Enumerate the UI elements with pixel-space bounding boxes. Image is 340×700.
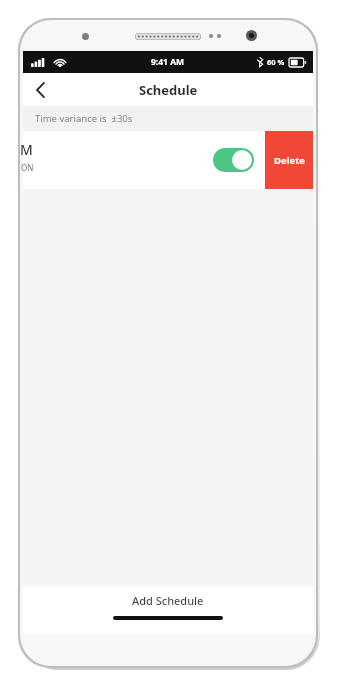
button[interactable]: Delete bbox=[265, 131, 313, 189]
button[interactable]: Schedule enabled bbox=[213, 148, 254, 172]
staticText: ON bbox=[21, 162, 34, 173]
button[interactable]: M bbox=[23, 131, 313, 189]
button[interactable]: Add Schedule bbox=[23, 586, 313, 614]
staticText: Time variance is ±30s bbox=[35, 112, 133, 125]
staticText: M bbox=[20, 140, 33, 159]
staticText: Delete bbox=[274, 154, 305, 167]
staticText: 60 % bbox=[267, 57, 285, 67]
staticText: Schedule bbox=[139, 81, 198, 99]
staticText: Add Schedule bbox=[132, 593, 204, 608]
staticText: 9:41 AM bbox=[151, 56, 185, 68]
button[interactable]: Back bbox=[23, 73, 57, 106]
